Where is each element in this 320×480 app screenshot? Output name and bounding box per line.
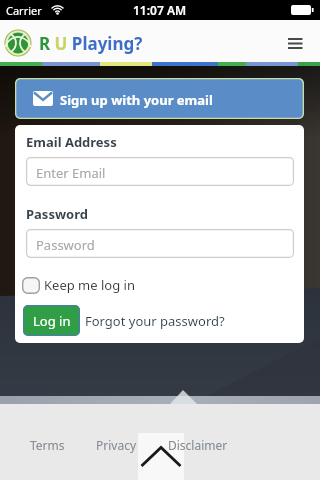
button[interactable]: Privacy [96, 437, 137, 453]
staticText: R U Playing? [39, 32, 143, 55]
button[interactable]: Forgot your password? [85, 312, 225, 330]
button[interactable]: Log in [23, 305, 80, 336]
button[interactable] [138, 433, 184, 480]
button[interactable]: Keep me log in [22, 276, 135, 294]
staticText: Email Address [26, 133, 117, 151]
staticText: 11:07 AM [133, 2, 187, 18]
staticText: Enter Email [36, 164, 106, 182]
button[interactable]: Sign up with your email [15, 78, 304, 119]
button[interactable]: Password [26, 229, 294, 258]
staticText: Password [36, 236, 95, 254]
staticText: Keep me log in [44, 276, 135, 294]
staticText: Carrier [6, 3, 42, 18]
staticText: Password [26, 205, 88, 223]
button[interactable]: Disclaimer [168, 437, 228, 453]
staticText: Log in [33, 312, 71, 330]
button[interactable]: Enter Email [26, 157, 294, 186]
button[interactable] [284, 35, 306, 51]
staticText: Sign up with your email [60, 91, 213, 109]
button[interactable]: Terms [30, 437, 65, 453]
